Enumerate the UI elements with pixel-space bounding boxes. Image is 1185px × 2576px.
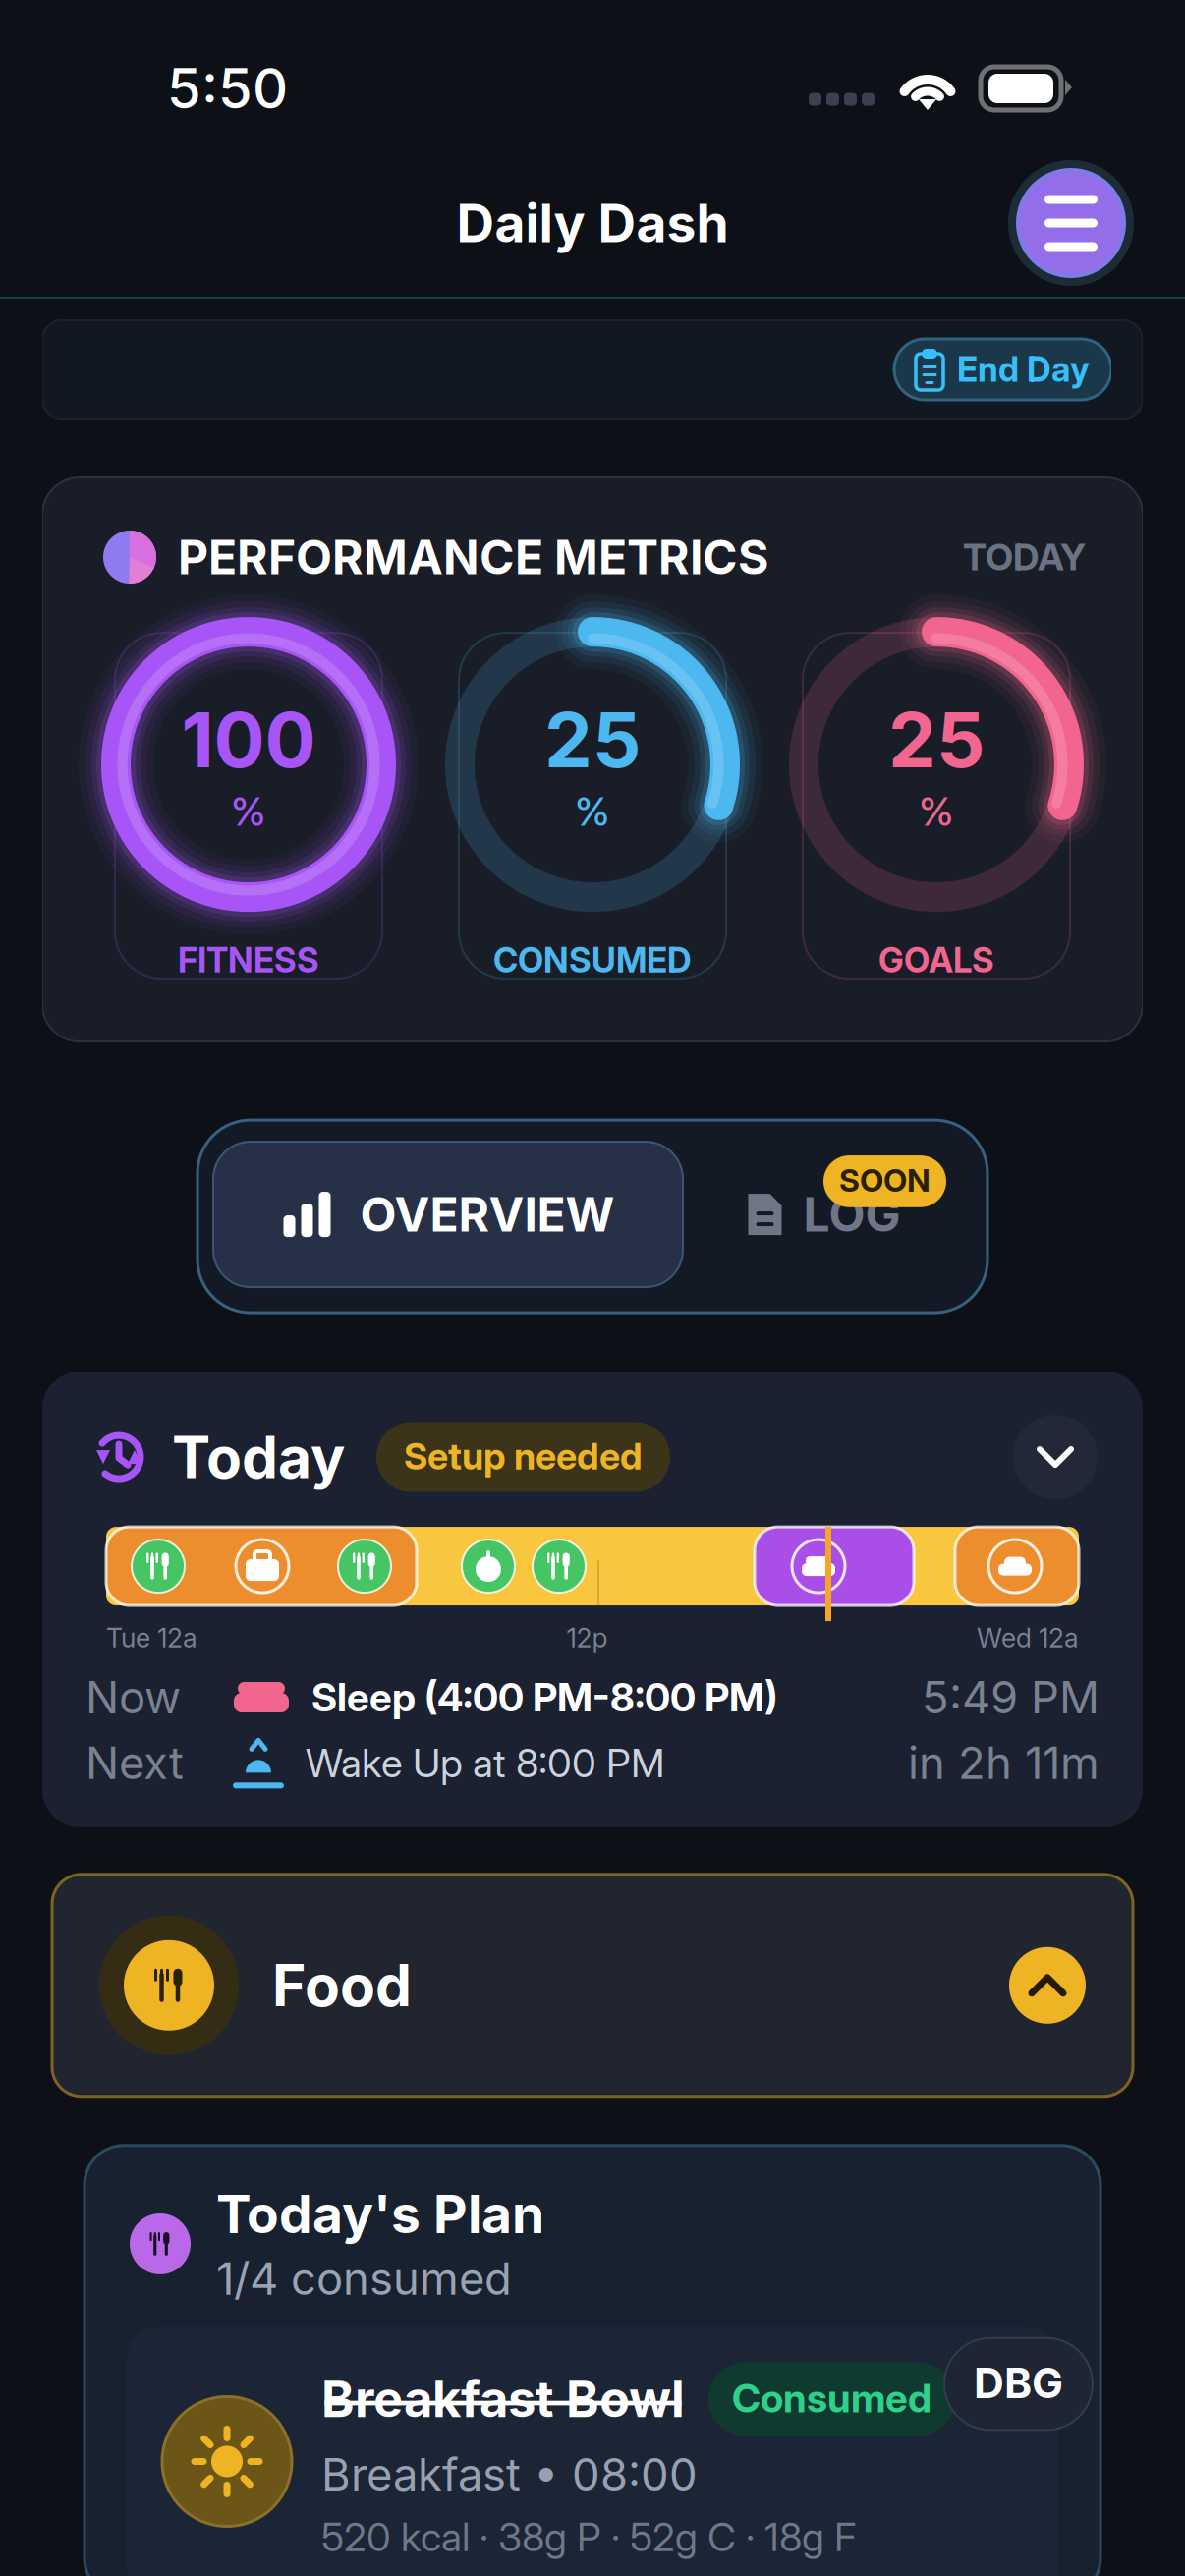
staticText: 1/4 consumed [216, 2252, 512, 2306]
staticText: Sleep (4:00 PM-8:00 PM) [311, 1673, 777, 1721]
staticText: % [919, 788, 954, 835]
staticText: Next [85, 1736, 184, 1790]
staticText: Wake Up at 8:00 PM [306, 1739, 664, 1787]
staticText: Now [85, 1670, 181, 1724]
staticText: FITNESS [178, 939, 319, 980]
staticText: GOALS [878, 939, 994, 980]
staticText: 5:49 PM [922, 1670, 1100, 1724]
staticText: Wed 12a [977, 1622, 1079, 1654]
staticText: Food [272, 1950, 412, 2020]
button[interactable]: End Day [894, 339, 1111, 400]
staticText: 520 kcal · 38g P · 52g C · 18g F [321, 2513, 856, 2561]
staticText: Consumed [732, 2374, 931, 2422]
button[interactable]: OVERVIEW [213, 1142, 683, 1287]
staticText: LOG [803, 1186, 901, 1243]
staticText: Tue 12a [106, 1622, 197, 1654]
button[interactable]: Collapse [1013, 1415, 1098, 1499]
staticText: 25 [888, 694, 985, 786]
staticText: SOON [839, 1161, 931, 1199]
staticText: PERFORMANCE METRICS [178, 529, 768, 586]
staticText: 25 [544, 694, 641, 786]
staticText: OVERVIEW [360, 1186, 615, 1243]
staticText: 5:50 [167, 55, 288, 122]
staticText: Setup needed [404, 1434, 643, 1478]
staticText: Today's Plan [216, 2182, 544, 2246]
staticText: 12p [566, 1622, 608, 1654]
button[interactable]: Menu [1008, 160, 1134, 286]
staticText: % [231, 788, 266, 835]
staticText: % [575, 788, 610, 835]
button[interactable]: Food [52, 1874, 1133, 2096]
staticText: Today [172, 1422, 345, 1492]
staticText: Breakfast Bowl [321, 2369, 685, 2429]
staticText: Daily Dash [456, 191, 729, 255]
staticText: End Day [957, 349, 1090, 390]
staticText: 100 [181, 694, 316, 786]
staticText: DBG [974, 2358, 1063, 2408]
staticText: Breakfast • 08:00 [321, 2447, 698, 2501]
button[interactable]: LOG [683, 1142, 966, 1287]
staticText: TODAY [963, 535, 1086, 579]
staticText: CONSUMED [493, 939, 692, 980]
staticText: in 2h 11m [908, 1736, 1100, 1790]
